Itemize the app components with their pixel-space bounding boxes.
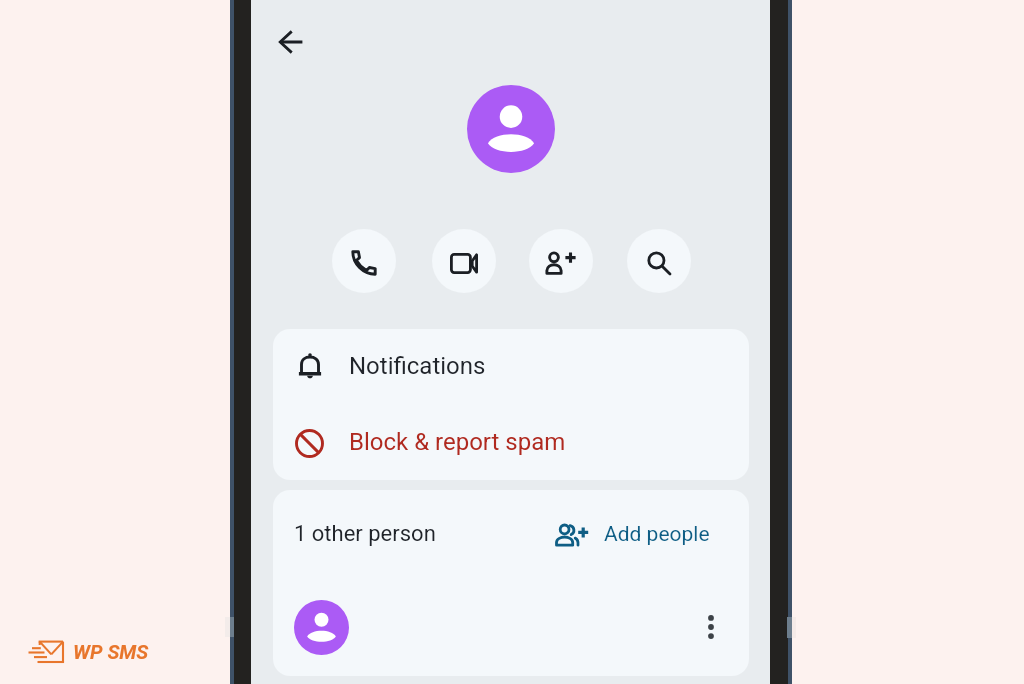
staticText: 1 other person	[294, 521, 436, 547]
staticText: Notifications	[349, 352, 486, 380]
button[interactable]: Call	[332, 229, 396, 293]
button[interactable]: Notifications	[295, 329, 727, 405]
button[interactable]: Contact photo	[467, 85, 555, 173]
button[interactable]: Add people	[551, 514, 714, 555]
button[interactable]: Add person	[529, 229, 593, 293]
button[interactable]: More options	[692, 608, 730, 646]
button[interactable]: More options	[294, 578, 730, 676]
staticText: WP SMS	[73, 640, 149, 663]
button[interactable]: Video call	[432, 229, 496, 293]
button[interactable]: Back	[267, 18, 315, 66]
staticText: Block & report spam	[349, 428, 566, 456]
button[interactable]: Search	[627, 229, 691, 293]
staticText: Add people	[604, 522, 710, 547]
button[interactable]: Block & report spam	[295, 405, 727, 480]
